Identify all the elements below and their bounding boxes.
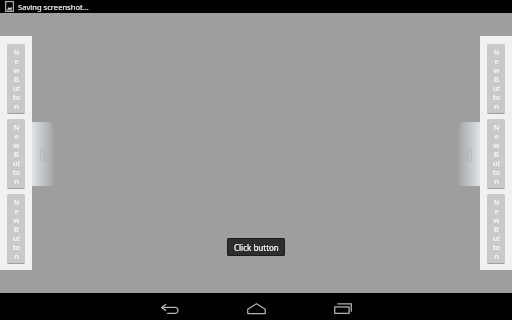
button[interactable]: Drawer handle: [32, 122, 53, 186]
staticText: Saving screenshot…: [18, 2, 89, 12]
button[interactable]: New Button: [487, 44, 505, 114]
staticText: New Button: [12, 122, 21, 186]
staticText: Click button: [234, 242, 279, 253]
button[interactable]: New Button: [487, 194, 505, 264]
button[interactable]: New Button: [7, 44, 25, 114]
button[interactable]: Back: [150, 297, 190, 320]
staticText: New Button: [492, 197, 501, 261]
staticText: New Button: [12, 47, 21, 111]
staticText: New Button: [12, 197, 21, 261]
button[interactable]: New Button: [7, 194, 25, 264]
staticText: New Button: [492, 47, 501, 111]
button[interactable]: New Button: [487, 119, 505, 189]
button[interactable]: Recent apps: [323, 297, 363, 320]
button[interactable]: New Button: [7, 119, 25, 189]
staticText: New Button: [492, 122, 501, 186]
button[interactable]: Home: [236, 297, 276, 320]
button[interactable]: Drawer handle: [459, 122, 480, 186]
